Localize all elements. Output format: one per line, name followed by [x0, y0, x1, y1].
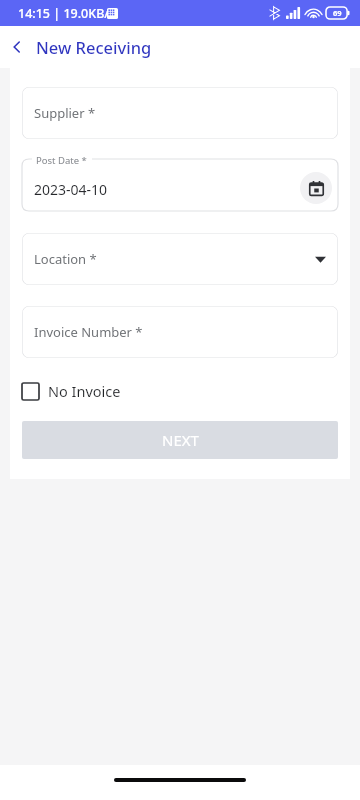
- staticText: New Receiving: [36, 36, 152, 58]
- staticText: 2023-04-10: [34, 180, 108, 199]
- button[interactable]: Supplier *: [22, 87, 338, 139]
- staticText: Supplier *: [34, 104, 96, 122]
- staticText: Post Date *: [36, 154, 87, 167]
- staticText: 69: [333, 8, 342, 18]
- staticText: No Invoice: [48, 381, 121, 401]
- button[interactable]: Location dropdown: [22, 233, 338, 285]
- staticText: Location *: [34, 250, 97, 268]
- button[interactable]: NEXT: [22, 421, 338, 459]
- button[interactable]: Pick date: [300, 172, 332, 204]
- staticText: 14:15 | 19.0KB/s: [18, 5, 116, 22]
- staticText: NEXT: [162, 430, 199, 450]
- button[interactable]: Back: [0, 30, 34, 64]
- button[interactable]: Invoice Number *: [22, 306, 338, 358]
- button[interactable]: No Invoice: [22, 379, 121, 403]
- staticText: Invoice Number *: [34, 323, 143, 341]
